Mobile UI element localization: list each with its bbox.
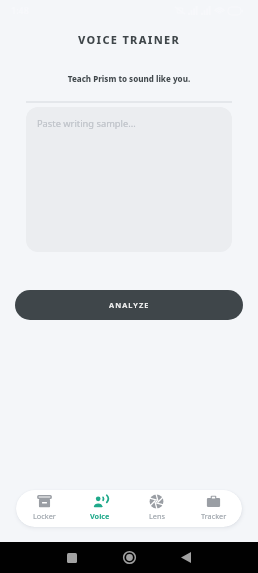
button[interactable]: Recent apps [67,553,77,563]
button[interactable]: Back [181,552,191,563]
staticText: Teach Prism to sound like you. [0,73,258,84]
staticText: Voice [90,511,110,521]
button[interactable]: Paste writing sample... [26,107,232,252]
button[interactable]: Voice [72,490,128,527]
staticText: Paste writing sample... [37,117,136,130]
button[interactable]: Home [123,551,136,564]
button[interactable]: Tracker [185,490,242,527]
staticText: Locker [33,511,56,521]
staticText: Lens [149,511,165,521]
button[interactable]: ANALYZE [15,290,243,320]
staticText: VOICE TRAINER [0,32,258,47]
button[interactable]: Locker [16,490,72,527]
staticText: Tracker [201,511,227,521]
button[interactable]: Lens [128,490,185,527]
staticText: ANALYZE [109,300,150,310]
